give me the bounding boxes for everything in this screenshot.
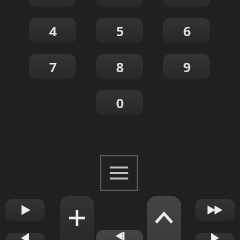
button[interactable]: Next bbox=[195, 233, 235, 240]
staticText: 5 bbox=[116, 22, 124, 40]
staticText: 0 bbox=[116, 94, 124, 112]
staticText: 4 bbox=[49, 22, 57, 40]
button[interactable]: 5 bbox=[96, 18, 143, 43]
button[interactable]: 8 bbox=[96, 54, 143, 79]
staticText: 9 bbox=[183, 58, 191, 76]
button[interactable]: Previous bbox=[5, 233, 45, 240]
button[interactable]: 6 bbox=[163, 18, 210, 43]
button[interactable]: 7 bbox=[29, 54, 76, 79]
button[interactable]: Play bbox=[5, 199, 45, 221]
button[interactable]: Fast forward bbox=[195, 199, 235, 221]
button[interactable]: 9 bbox=[163, 54, 210, 79]
button[interactable]: Menu bbox=[100, 155, 138, 191]
button[interactable]: 0 bbox=[96, 90, 143, 115]
button[interactable]: Volume up bbox=[60, 196, 94, 240]
button[interactable]: Mute bbox=[96, 230, 143, 240]
staticText: 6 bbox=[183, 22, 191, 40]
button[interactable]: Channel up bbox=[147, 196, 181, 240]
staticText: 8 bbox=[116, 58, 124, 76]
staticText: 7 bbox=[49, 58, 57, 76]
button[interactable]: 4 bbox=[29, 18, 76, 43]
